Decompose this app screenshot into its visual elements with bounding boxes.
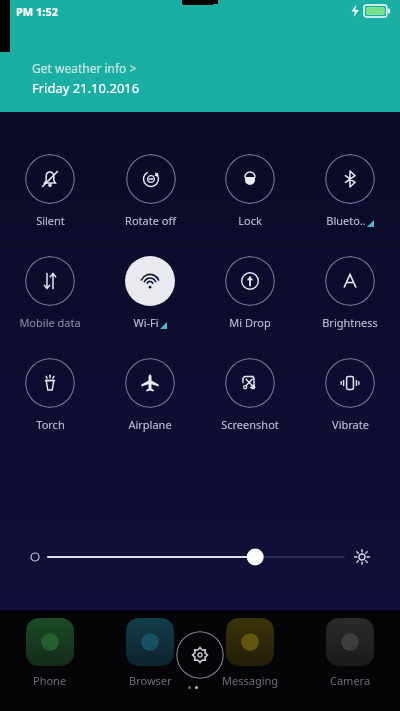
button[interactable]: Rotate off: [121, 152, 180, 230]
staticText: Torch: [36, 417, 65, 432]
staticText: PM 1:52: [16, 4, 59, 19]
staticText: Silent: [36, 213, 65, 228]
staticText: Lock: [238, 213, 262, 228]
button[interactable]: Brightness: [318, 254, 382, 332]
button[interactable]: Vibrate: [321, 356, 379, 434]
button[interactable]: Mobile data: [15, 254, 85, 332]
staticText: Brightness: [322, 315, 378, 330]
button[interactable]: Camera: [300, 618, 400, 688]
button[interactable]: Phone: [0, 618, 100, 688]
staticText: Get weather info >: [32, 60, 137, 76]
button[interactable]: Brightness slider: [0, 540, 400, 574]
button[interactable]: Settings: [176, 631, 224, 679]
staticText: Mobile data: [19, 315, 81, 330]
button[interactable]: Blueto..: [321, 152, 379, 230]
button[interactable]: Get weather info >: [30, 58, 142, 99]
button[interactable]: Mi Drop: [221, 254, 279, 332]
staticText: Rotate off: [125, 213, 176, 228]
staticText: Messaging: [222, 673, 279, 688]
staticText: Blueto..: [326, 213, 366, 228]
staticText: Airplane: [128, 417, 172, 432]
button[interactable]: Lock: [221, 152, 279, 230]
button[interactable]: Silent: [21, 152, 79, 230]
button[interactable]: Browser: [100, 618, 200, 688]
staticText: Friday 21.10.2016: [32, 79, 140, 97]
staticText: Mi Drop: [229, 315, 271, 330]
staticText: Vibrate: [332, 417, 369, 432]
staticText: Screenshot: [221, 417, 279, 432]
button[interactable]: Airplane: [121, 356, 179, 434]
staticText: Camera: [330, 673, 371, 688]
staticText: Browser: [129, 673, 172, 688]
staticText: Wi-Fi: [133, 315, 159, 330]
staticText: Phone: [33, 673, 67, 688]
button[interactable]: Screenshot: [217, 356, 283, 434]
button[interactable]: Wi-Fi: [121, 254, 179, 332]
button[interactable]: Torch: [21, 356, 79, 434]
button[interactable]: Messaging: [200, 618, 300, 688]
